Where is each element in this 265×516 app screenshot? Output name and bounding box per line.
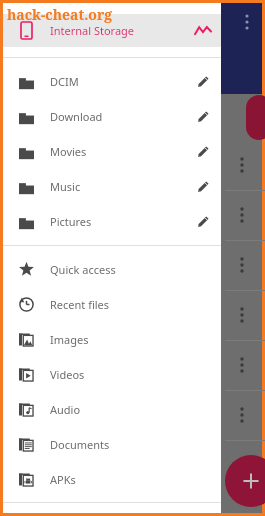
button[interactable]: Music (3, 169, 221, 204)
staticText: Pictures (50, 214, 92, 229)
staticText: Images (50, 332, 89, 347)
staticText: APKs (50, 472, 76, 487)
button[interactable]: Edit DCIM (185, 64, 221, 99)
button[interactable]: APKs (3, 462, 221, 497)
button[interactable]: Quick access (3, 252, 221, 287)
button[interactable]: DCIM (3, 64, 221, 99)
staticText: Internal Storage (50, 23, 135, 38)
button[interactable]: Item options (231, 250, 253, 280)
button[interactable]: Add (225, 455, 265, 507)
button[interactable]: More options (236, 5, 258, 39)
staticText: Documents (50, 437, 110, 452)
staticText: Audio (50, 402, 81, 417)
staticText: Recent files (50, 297, 110, 312)
button[interactable]: Item options (231, 200, 253, 230)
staticText: DCIM (50, 74, 79, 89)
staticText: hack-cheat.org (7, 5, 113, 24)
button[interactable]: Edit Music (185, 169, 221, 204)
staticText: Music (50, 179, 81, 194)
button[interactable]: Edit Pictures (185, 204, 221, 239)
button[interactable]: Download (3, 99, 221, 134)
staticText: Movies (50, 144, 87, 159)
staticText: Quick access (50, 262, 116, 277)
button[interactable]: Images (3, 322, 221, 357)
button[interactable]: Item options (231, 450, 253, 480)
button[interactable]: Videos (3, 357, 221, 392)
button[interactable]: Item options (231, 150, 253, 180)
button[interactable]: Pictures (3, 204, 221, 239)
staticText: Download (50, 109, 103, 124)
button[interactable]: Movies (3, 134, 221, 169)
button[interactable]: Audio (3, 392, 221, 427)
button[interactable]: Recent files (3, 287, 221, 322)
button[interactable]: Item options (231, 350, 253, 380)
button[interactable]: Edit Download (185, 99, 221, 134)
button[interactable]: Action (246, 95, 265, 140)
button[interactable]: Internal Storage (3, 14, 221, 47)
button[interactable]: Documents (3, 427, 221, 462)
button[interactable]: Item options (231, 300, 253, 330)
button[interactable]: Edit Movies (185, 134, 221, 169)
staticText: Videos (50, 367, 85, 382)
button[interactable]: Item options (231, 400, 253, 430)
